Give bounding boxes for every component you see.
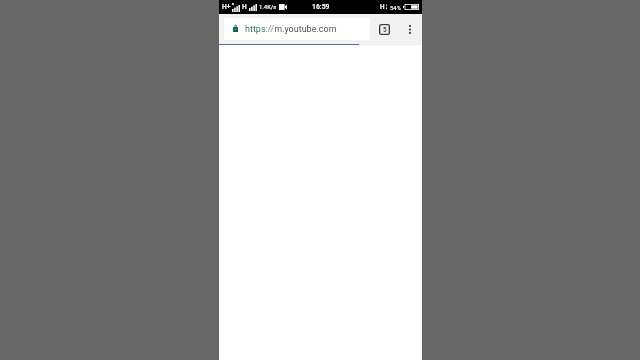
staticText: 54% — [390, 4, 402, 11]
staticText: 1.4K/s — [259, 4, 277, 11]
staticText: H+ — [222, 3, 231, 11]
button[interactable]: More options — [399, 19, 420, 40]
staticText: 16:59 — [312, 3, 330, 11]
button[interactable]: https://m.youtube.com — [224, 18, 370, 40]
staticText: H — [242, 3, 247, 11]
button[interactable]: Tabs, 5 open — [374, 19, 395, 40]
staticText: H — [380, 3, 385, 11]
staticText: https://m.youtube.com — [245, 24, 337, 35]
staticText: 5 — [383, 26, 387, 34]
